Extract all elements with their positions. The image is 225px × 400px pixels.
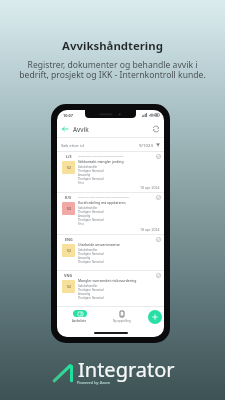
staticText: Ansvarlig [78, 256, 91, 260]
button[interactable]: ENG [57, 235, 164, 271]
staticText: Thorbjørn Ramstad [78, 177, 104, 181]
staticText: Kursfordeling må oppdateres [78, 200, 126, 205]
staticText: 10:07 [63, 113, 73, 118]
button[interactable]: Søk etter id [61, 138, 160, 151]
staticText: Stikkontakt mangler jording [78, 159, 124, 164]
staticText: L/S [66, 154, 72, 159]
staticText: Thorbjørn Ramstad [78, 252, 104, 256]
staticText: Thorbjørn Ramstad [78, 169, 104, 173]
staticText: 18 apr 2024 [140, 185, 160, 190]
staticText: Saksbehandler [78, 206, 98, 210]
staticText: Frist [78, 181, 84, 185]
staticText: Thorbjørn Ramstad [78, 288, 104, 292]
staticText: Thorbjørn Ramstad [78, 296, 104, 300]
staticText: Thorbjørn Ramstad [78, 218, 104, 222]
staticText: ENG [65, 237, 73, 242]
button[interactable]: Ny opptelling [106, 310, 137, 323]
staticText: K/S [65, 195, 72, 200]
staticText: Thorbjørn Ramstad [78, 210, 104, 214]
staticText: 52 [67, 284, 71, 289]
staticText: VNG [64, 273, 73, 278]
staticText: Integrator [78, 356, 175, 383]
staticText: 52 [67, 165, 71, 170]
staticText: Saksbehandler [78, 248, 98, 252]
button[interactable]: Avviksliste [64, 310, 95, 323]
button[interactable]: L/S [57, 152, 164, 193]
staticText: Thorbjørn Ramstad [78, 260, 104, 264]
staticText: 18 apr 2024 [140, 227, 160, 232]
button[interactable]: Add new deviation [148, 310, 162, 324]
staticText: Saksbehandler [78, 165, 98, 169]
staticText: Utarbeide ansvarsmatrise [78, 242, 120, 247]
staticText: Stikkontakt mangler jording behandles [78, 154, 124, 157]
staticText: Ansvarlig [78, 292, 91, 296]
staticText: Powered by Azure [77, 380, 111, 385]
staticText: Frist [78, 222, 84, 226]
button[interactable]: VNG [57, 271, 164, 307]
button[interactable]: Refresh [151, 124, 161, 134]
staticText: Ansvarlig [78, 214, 91, 218]
staticText: Avvikshåndtering [62, 38, 163, 54]
staticText: 52 [67, 206, 71, 211]
staticText: Registrer, dokumenter og behandle avvik … [19, 59, 206, 80]
staticText: Saksbehandler [78, 284, 98, 288]
staticText: Avvik [73, 125, 89, 133]
staticText: Behov for ikke vurdere mot ettersaksansv… [78, 195, 130, 198]
button[interactable]: K/S [57, 193, 164, 235]
staticText: 52 [67, 248, 71, 253]
staticText: Avviksliste [72, 319, 87, 323]
staticText: Ny opptelling [113, 319, 131, 323]
staticText: 9/1023 [139, 142, 153, 148]
button[interactable]: Back [60, 124, 70, 134]
staticText: Mangler oversendet risikovurdering [78, 278, 137, 283]
staticText: Søk etter id [61, 142, 84, 148]
staticText: Ansvarlig [78, 173, 91, 177]
